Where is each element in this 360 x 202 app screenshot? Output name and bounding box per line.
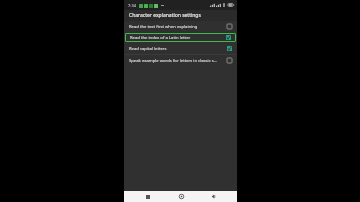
- staticText: Speak example words for letters in class…: [129, 58, 225, 64]
- staticText: Character explanation settings: [129, 12, 201, 19]
- button[interactable]: Read capital letters: [124, 43, 237, 54]
- button[interactable]: Home: [173, 191, 189, 202]
- button[interactable]: Back: [205, 191, 221, 202]
- button[interactable]: Recent apps: [140, 191, 156, 202]
- staticText: Read the index of a Latin letter: [130, 35, 224, 41]
- button[interactable]: Read the text first when explaining: [124, 21, 237, 32]
- staticText: Read capital letters: [129, 46, 225, 52]
- button[interactable]: Speak example words for letters in class…: [124, 55, 237, 66]
- staticText: 7:34: [128, 3, 136, 8]
- button[interactable]: Read the index of a Latin letter: [125, 33, 236, 42]
- staticText: Read the text first when explaining: [129, 24, 225, 30]
